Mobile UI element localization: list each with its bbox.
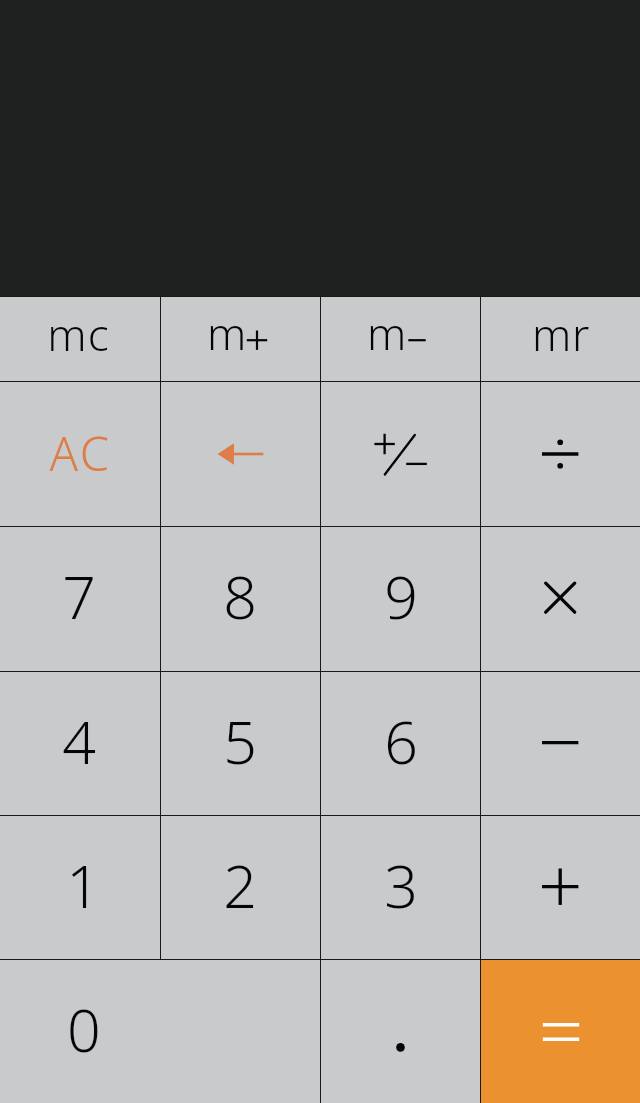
button[interactable]: 6 [321,672,480,815]
button[interactable]: 4 [0,672,160,815]
staticText: m [207,303,247,363]
button[interactable]: Plus [481,816,640,959]
button[interactable]: Memory plus [161,297,320,381]
button[interactable]: 9 [321,527,480,671]
staticText: 8 [223,556,257,636]
button[interactable]: Multiply [481,527,640,671]
button[interactable]: Equals [481,960,640,1103]
button[interactable]: 5 [161,672,320,815]
staticText: mr [532,304,590,364]
button[interactable]: mc [0,297,160,381]
button[interactable]: AC [0,382,160,526]
staticText: mc [47,304,110,364]
button[interactable]: 2 [161,816,320,959]
button[interactable]: Plus minus sign [321,382,480,526]
staticText: 3 [384,845,418,925]
button[interactable]: Memory minus [321,297,480,381]
staticText: AC [49,421,112,485]
button[interactable]: Decimal point [321,960,480,1103]
button[interactable]: Minus [481,672,640,815]
button[interactable]: 3 [321,816,480,959]
staticText: 9 [384,556,418,636]
staticText: 1 [66,845,100,925]
button[interactable]: 7 [0,527,160,671]
staticText: 2 [223,845,257,925]
staticText: 4 [62,701,96,781]
button[interactable]: Divide [481,382,640,526]
button[interactable]: Backspace [161,382,320,526]
staticText: 0 [67,989,101,1069]
staticText: 5 [223,701,257,781]
button[interactable]: 0 [0,960,320,1103]
staticText: 6 [384,701,418,781]
button[interactable]: 1 [0,816,160,959]
button[interactable]: 8 [161,527,320,671]
staticText: m [367,303,407,363]
staticText: 7 [62,556,96,636]
button[interactable]: mr [481,297,640,381]
